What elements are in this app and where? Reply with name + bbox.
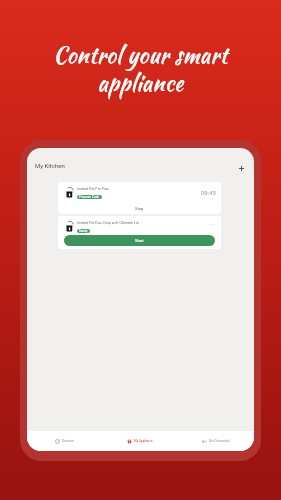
button[interactable]: Discover xyxy=(27,431,102,451)
staticText: My Appliance xyxy=(134,439,153,443)
button[interactable]: My Appliance xyxy=(102,431,178,451)
button[interactable]: More options xyxy=(209,221,216,228)
button[interactable]: Stop xyxy=(58,203,221,214)
staticText: Control your smart appliance xyxy=(0,39,281,99)
button[interactable]: Get Connected xyxy=(178,431,254,451)
button[interactable]: Add appliance xyxy=(233,160,249,176)
staticText: Pressure Cook xyxy=(79,195,100,199)
staticText: Stop xyxy=(135,206,144,211)
staticText: Start xyxy=(135,238,144,243)
staticText: Instant Pot Pro Plus xyxy=(77,187,109,191)
staticText: 09:45 xyxy=(201,189,216,196)
staticText: Ready xyxy=(79,229,88,233)
staticText: My Kitchen xyxy=(35,162,65,169)
button[interactable]: Start xyxy=(64,235,215,246)
staticText: Instant Pot Duo Crisp with Ultimate Lid xyxy=(77,221,139,225)
staticText: Discover xyxy=(62,439,74,443)
staticText: Get Connected xyxy=(209,439,230,443)
